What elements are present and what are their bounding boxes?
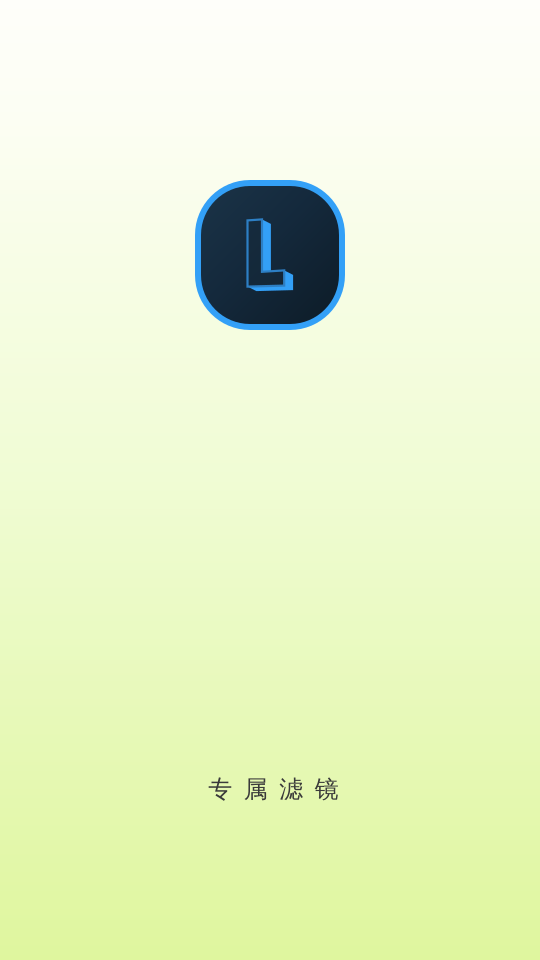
- staticText: 专属滤镜: [208, 774, 339, 804]
- button[interactable]: 专属滤镜: [198, 183, 342, 327]
